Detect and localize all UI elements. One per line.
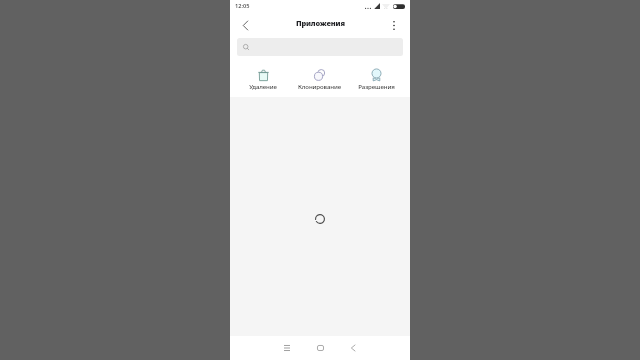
button[interactable]: Back [238,18,252,32]
staticText: 12:05 [235,2,250,10]
button[interactable]: Разрешения [348,69,405,90]
button[interactable]: Back [346,341,360,355]
staticText: Удаление [249,82,277,90]
button[interactable]: Search [237,38,403,56]
button[interactable]: Recent apps [280,341,294,355]
button[interactable]: Home [313,341,327,355]
staticText: Клонирование [298,82,341,90]
button[interactable]: Удаление [235,69,291,90]
staticText: Приложения [296,18,345,28]
staticText: Разрешения [358,82,395,90]
button[interactable]: Клонирование [291,69,348,90]
button[interactable]: More options [387,18,401,32]
